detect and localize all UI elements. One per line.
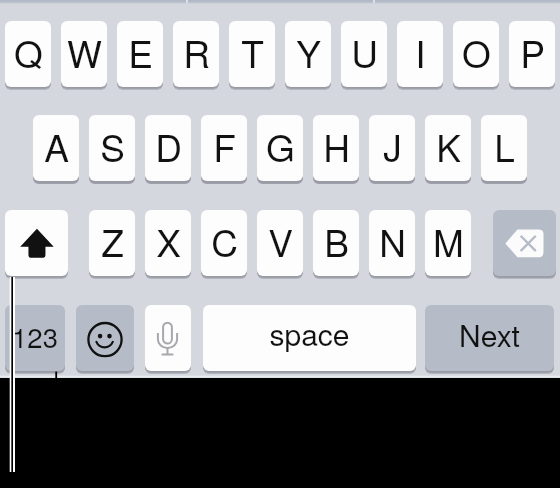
staticText: C <box>211 215 238 268</box>
staticText: L <box>494 120 515 173</box>
button[interactable]: H <box>313 115 359 181</box>
staticText: F <box>213 120 236 173</box>
button[interactable]: Emoji <box>76 305 134 371</box>
staticText: O <box>462 26 491 79</box>
staticText: K <box>436 120 461 173</box>
button[interactable]: V <box>257 210 303 276</box>
button[interactable]: Q <box>5 21 51 87</box>
staticText: U <box>351 26 378 79</box>
staticText: Q <box>14 26 43 79</box>
button[interactable]: O <box>453 21 499 87</box>
button[interactable]: I <box>397 21 443 87</box>
button[interactable]: S <box>89 115 135 181</box>
staticText: T <box>241 26 264 79</box>
staticText: G <box>266 120 295 173</box>
button[interactable]: R <box>173 21 219 87</box>
button[interactable]: Z <box>89 210 135 276</box>
button[interactable]: G <box>257 115 303 181</box>
staticText: X <box>156 215 181 268</box>
button[interactable]: F <box>201 115 247 181</box>
staticText: S <box>100 120 125 173</box>
staticText: space <box>269 312 350 355</box>
staticText: A <box>44 120 69 173</box>
button[interactable]: P <box>509 21 555 87</box>
staticText: D <box>155 120 182 173</box>
button[interactable]: J <box>369 115 415 181</box>
staticText: E <box>128 26 153 79</box>
button[interactable]: X <box>145 210 191 276</box>
button[interactable]: A <box>33 115 79 181</box>
staticText: B <box>324 215 349 268</box>
button[interactable]: W <box>61 21 107 87</box>
button[interactable]: Y <box>285 21 331 87</box>
staticText: P <box>520 26 545 79</box>
button[interactable]: Voice input <box>145 305 191 371</box>
staticText: Next <box>459 313 520 356</box>
button[interactable]: Backspace <box>493 210 556 276</box>
staticText: I <box>415 26 426 79</box>
staticText: N <box>379 215 406 268</box>
staticText: V <box>268 215 293 268</box>
staticText: Z <box>101 215 124 268</box>
staticText: J <box>383 120 402 173</box>
button[interactable]: 123 <box>5 305 65 371</box>
button[interactable]: D <box>145 115 191 181</box>
staticText: R <box>183 26 210 79</box>
staticText: H <box>323 120 350 173</box>
button[interactable]: K <box>425 115 471 181</box>
button[interactable]: N <box>369 210 415 276</box>
staticText: W <box>67 26 102 79</box>
button[interactable]: B <box>313 210 359 276</box>
button[interactable]: space <box>203 305 416 371</box>
staticText: M <box>433 215 464 268</box>
button[interactable]: Shift <box>5 210 68 276</box>
button[interactable]: U <box>341 21 387 87</box>
button[interactable]: Next <box>425 305 554 371</box>
button[interactable]: E <box>117 21 163 87</box>
button[interactable]: L <box>481 115 527 181</box>
staticText: Y <box>296 26 321 79</box>
button[interactable]: T <box>229 21 275 87</box>
staticText: 123 <box>12 316 58 355</box>
button[interactable]: C <box>201 210 247 276</box>
button[interactable]: M <box>425 210 471 276</box>
